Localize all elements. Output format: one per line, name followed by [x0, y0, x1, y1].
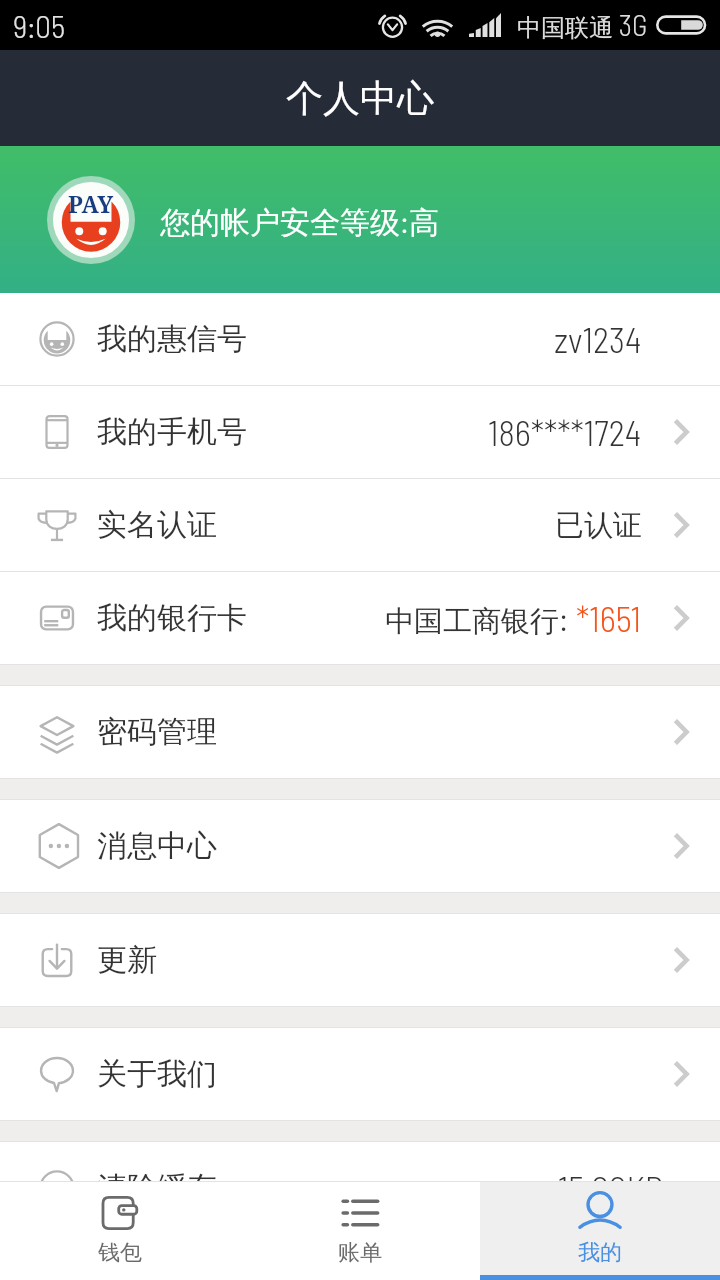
button[interactable]: 我的银行卡: [0, 572, 720, 664]
button[interactable]: 消息中心: [0, 800, 720, 892]
button[interactable]: 账单: [240, 1182, 480, 1280]
staticText: 中国工商银行:: [385, 596, 576, 640]
staticText: 实名认证: [97, 506, 217, 544]
staticText: 更新: [97, 941, 157, 979]
staticText: 我的: [578, 1239, 622, 1267]
staticText: PAY: [68, 188, 114, 219]
staticText: 消息中心: [97, 827, 217, 865]
button[interactable]: 实名认证: [0, 479, 720, 571]
staticText: *1651: [576, 597, 642, 639]
button[interactable]: 钱包: [0, 1182, 240, 1280]
staticText: zv1234: [554, 318, 642, 360]
button[interactable]: 更新: [0, 914, 720, 1006]
button[interactable]: 我的手机号: [0, 386, 720, 478]
staticText: 我的银行卡: [97, 599, 247, 637]
button[interactable]: 清除缓存: [0, 1142, 720, 1181]
staticText: 中国联通 3G: [517, 7, 648, 43]
staticText: 钱包: [98, 1239, 142, 1267]
staticText: 账单: [338, 1239, 382, 1267]
button[interactable]: 关于我们: [0, 1028, 720, 1120]
staticText: 个人中心: [286, 75, 434, 122]
staticText: 9:05: [13, 7, 65, 44]
staticText: 我的手机号: [97, 413, 247, 451]
button[interactable]: 密码管理: [0, 686, 720, 778]
staticText: 186****1724: [488, 411, 642, 453]
staticText: 清除缓存: [97, 1169, 217, 1181]
staticText: 我的惠信号: [97, 320, 247, 358]
staticText: 已认证: [555, 507, 642, 544]
staticText: 您的帐户安全等级:高: [160, 199, 439, 242]
staticText: 关于我们: [97, 1055, 217, 1093]
button[interactable]: 我的惠信号: [0, 293, 720, 385]
button[interactable]: 我的: [480, 1182, 720, 1280]
staticText: 15.00KB: [558, 1167, 664, 1181]
staticText: 密码管理: [97, 713, 217, 751]
